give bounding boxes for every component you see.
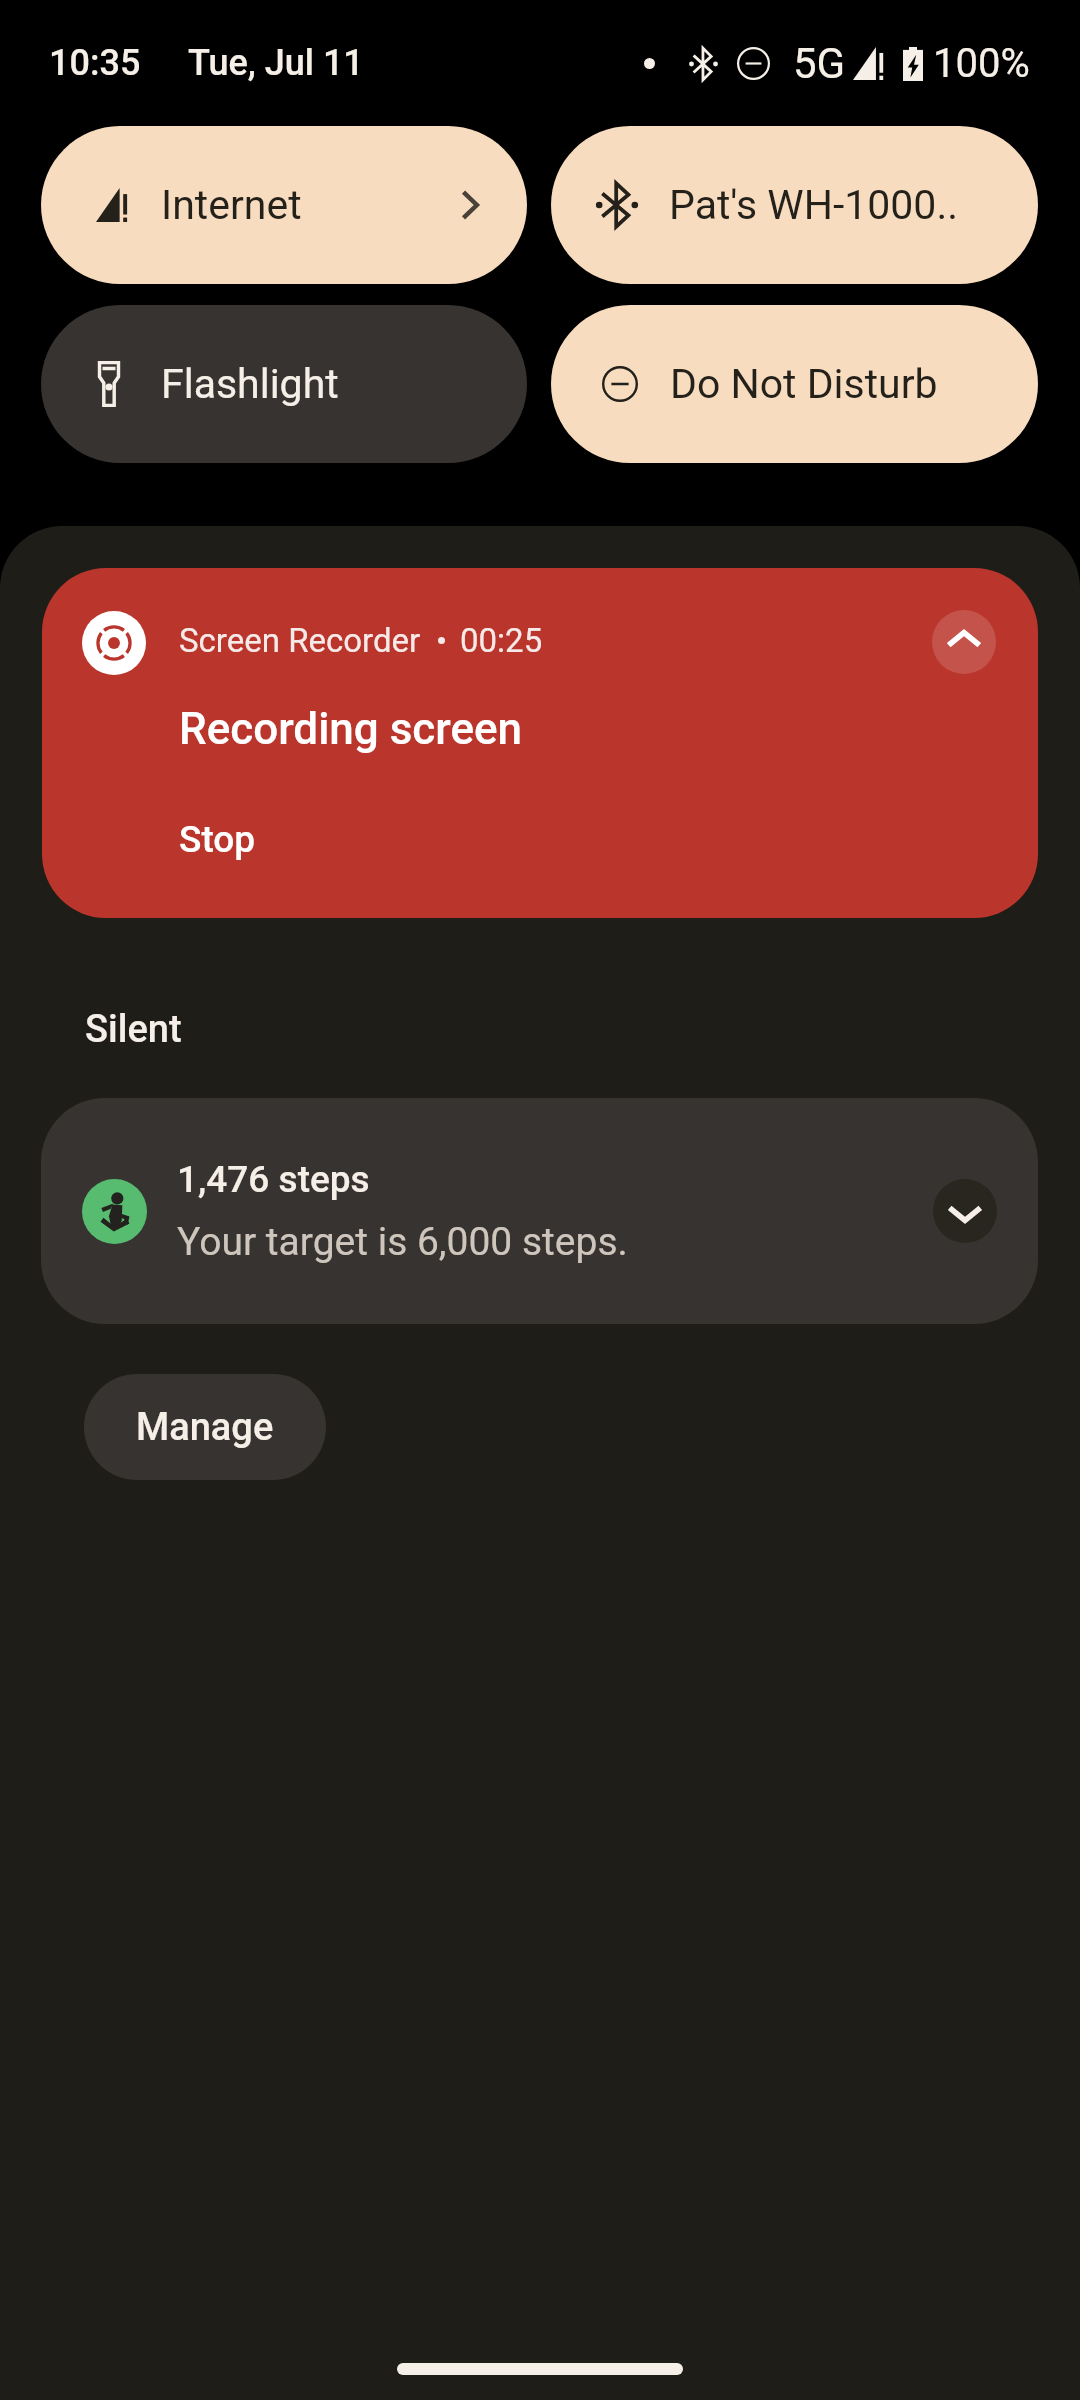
staticText: Tue, Jul 11 [188, 42, 364, 84]
button[interactable]: Flashlight [41, 305, 527, 463]
staticText: Screen Recorder [179, 621, 421, 660]
staticText: Flashlight [161, 360, 339, 408]
button[interactable]: Manage [84, 1374, 326, 1480]
button[interactable]: Pat's WH-1000.. [551, 126, 1038, 284]
button[interactable]: Stop [155, 794, 280, 885]
button[interactable]: Expand notification [933, 1179, 997, 1243]
staticText: 5G [793, 39, 846, 88]
button[interactable]: Internet [41, 126, 527, 284]
staticText: Pat's WH-1000.. [669, 181, 959, 229]
staticText: 100% [933, 40, 1030, 87]
button[interactable]: Screen Recorder [42, 568, 1038, 918]
staticText: 10:35 [49, 42, 141, 84]
staticText: Do Not Disturb [670, 360, 938, 408]
staticText: Silent [85, 1007, 182, 1052]
staticText: Recording screen [179, 703, 523, 755]
staticText: Internet [161, 181, 302, 229]
staticText: 00:25 [460, 621, 543, 660]
button[interactable]: 1,476 steps [41, 1098, 1038, 1324]
button[interactable]: Collapse notification [932, 610, 996, 674]
button[interactable]: Do Not Disturb [551, 305, 1038, 463]
staticText: Manage [136, 1405, 274, 1450]
staticText: Stop [179, 818, 256, 861]
staticText: 1,476 steps [177, 1158, 370, 1201]
staticText: Your target is 6,000 steps. [177, 1219, 628, 1265]
